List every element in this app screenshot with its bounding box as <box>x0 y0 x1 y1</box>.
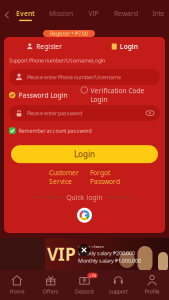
staticText: Inte <box>152 9 164 18</box>
staticText: Login <box>74 149 95 159</box>
staticText: Quick login <box>66 193 102 202</box>
staticText: Register + ₱7.00 <box>50 30 88 37</box>
staticText: Mission <box>49 9 73 18</box>
button[interactable]: Profile <box>135 271 169 298</box>
button[interactable]: Login <box>84 39 165 54</box>
staticText: +1% <box>89 273 96 278</box>
staticText: Customer Service <box>49 168 79 186</box>
staticText: Forgot Password <box>90 168 120 186</box>
button[interactable]: VIP <box>83 5 104 25</box>
button[interactable]: Customer Service <box>49 168 79 186</box>
button[interactable]: Support <box>101 271 135 298</box>
button[interactable]: Event <box>12 5 39 25</box>
staticText: Reward <box>114 9 138 18</box>
button[interactable]: Register <box>4 39 84 54</box>
staticText: VIP <box>88 9 98 18</box>
button[interactable]: Reward <box>110 5 142 25</box>
button[interactable]: Back <box>0 5 12 25</box>
staticText: Weekly salary ₱200,000 <box>78 250 135 257</box>
staticText: Home <box>9 288 24 295</box>
button[interactable]: Close advertisement <box>78 244 90 256</box>
button[interactable]: Password Login <box>9 91 81 100</box>
button[interactable]: ₱ <box>68 271 101 298</box>
button[interactable]: Offers <box>34 271 68 298</box>
staticText: Event <box>16 9 35 18</box>
staticText: VIP <box>47 242 76 265</box>
button[interactable]: Login <box>11 145 158 163</box>
button[interactable]: Remember account password <box>4 121 165 134</box>
button[interactable]: Mission <box>45 5 77 25</box>
button[interactable]: Forgot Password <box>90 168 120 186</box>
staticText: Please enter password <box>27 109 82 117</box>
button[interactable]: Sign in with Google <box>77 208 92 223</box>
button[interactable]: Home <box>0 271 34 298</box>
staticText: Verification Code Login <box>90 86 144 104</box>
staticText: Password Login <box>18 91 67 100</box>
button[interactable]: Inte <box>148 5 169 25</box>
staticText: Profile <box>145 288 160 295</box>
staticText: Register <box>36 42 62 51</box>
staticText: Please enter Phone number/Username <box>27 73 121 81</box>
staticText: Deposit <box>75 288 94 295</box>
staticText: Monthly salary ₱1,000,000 <box>78 257 141 264</box>
staticText: Offers <box>43 288 59 295</box>
staticText: Login <box>120 42 138 51</box>
staticText: Remember account password <box>18 127 91 134</box>
staticText: ₱ <box>82 276 86 285</box>
button[interactable]: Verification Code Login <box>81 86 144 104</box>
staticText: Support <box>109 288 128 295</box>
staticText: Support Phone number/UsernameLogin <box>9 57 105 64</box>
staticText: another chance <box>78 244 104 249</box>
